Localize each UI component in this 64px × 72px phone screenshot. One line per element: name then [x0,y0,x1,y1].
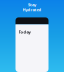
staticText: Hydrated [22,7,41,12]
staticText: Today [18,29,30,35]
staticText: Stay [28,2,36,7]
